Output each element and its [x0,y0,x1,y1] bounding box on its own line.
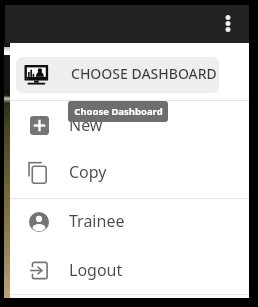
staticText: Copy [69,161,107,183]
button[interactable]: Copy [10,148,249,198]
staticText: CHOOSE DASHBOARD [71,64,217,83]
staticText: Trainee [69,210,125,232]
button[interactable]: Trainee [10,199,249,248]
button[interactable]: Logout [10,248,249,294]
button[interactable]: New [10,100,249,148]
button[interactable]: CHOOSE DASHBOARD [10,43,249,100]
staticText: New [69,114,103,136]
button[interactable]: More options [214,9,242,37]
staticText: Logout [69,259,123,281]
staticText: Choose Dashboard [74,105,163,118]
